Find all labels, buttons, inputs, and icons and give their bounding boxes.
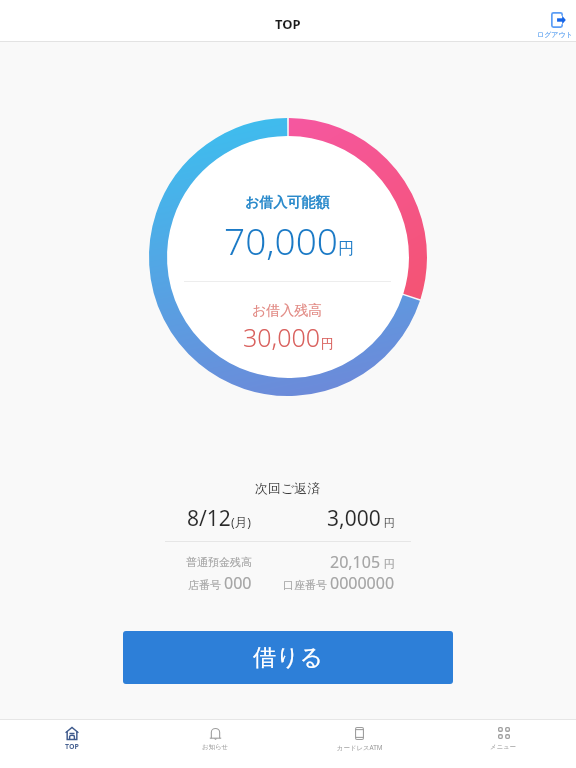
staticText: 20,105 (330, 551, 381, 573)
button[interactable]: 借りる (123, 631, 453, 684)
staticText: 店番号 (188, 577, 224, 592)
button[interactable]: お知らせ (144, 720, 288, 768)
staticText: TOP (65, 742, 79, 752)
staticText: 普通預金残高 (186, 555, 252, 569)
staticText: 口座番号 (283, 577, 330, 592)
staticText: 0000000 (330, 572, 395, 594)
staticText: 3,000 (327, 504, 381, 533)
staticText: 8/12 (187, 504, 231, 533)
staticText: 次回ご返済 (255, 480, 321, 496)
staticText: 円 (381, 556, 395, 571)
staticText: お借入可能額 (245, 194, 330, 212)
staticText: 借りる (253, 643, 324, 672)
button[interactable]: ログアウト Logout (530, 0, 576, 41)
staticText: 円 (321, 335, 334, 351)
staticText: 30,000 (243, 320, 321, 354)
button[interactable]: カードレスATM (288, 720, 432, 768)
staticText: TOP (275, 15, 301, 33)
button[interactable]: TOP (0, 720, 144, 768)
staticText: カードレスATM (337, 743, 383, 752)
staticText: メニュー (490, 743, 517, 751)
staticText: (月) (231, 514, 252, 531)
button[interactable]: メニュー (432, 720, 576, 768)
staticText: 円 (338, 239, 354, 259)
staticText: 円 (381, 515, 395, 530)
staticText: お知らせ (202, 743, 229, 751)
staticText: お借入残高 (252, 302, 323, 320)
staticText: 70,000 (224, 215, 338, 265)
staticText: ログアウト (537, 30, 573, 39)
staticText: 000 (224, 572, 252, 594)
